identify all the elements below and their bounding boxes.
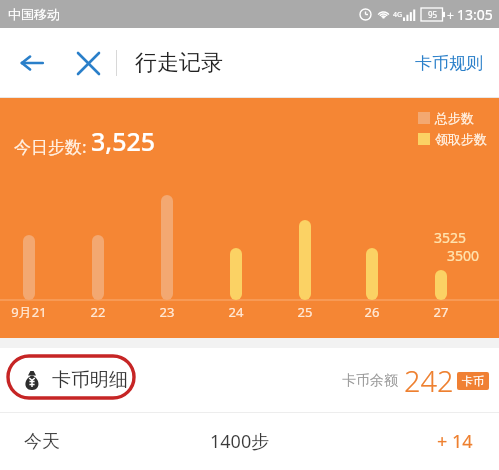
staticText: 3500 xyxy=(447,246,480,265)
staticText: 卡币规则 xyxy=(415,53,483,74)
staticText: 23 xyxy=(147,303,187,321)
staticText: 行走记录 xyxy=(135,49,223,77)
button[interactable]: 卡币规则 xyxy=(411,45,487,82)
staticText: 13:05 xyxy=(457,5,493,24)
staticText: 3525 xyxy=(434,228,467,247)
staticText: 卡币 xyxy=(462,374,484,388)
button[interactable]: Close xyxy=(68,43,108,83)
button[interactable]: 卡币明细 xyxy=(8,361,142,399)
staticText: 卡币余额 xyxy=(342,372,398,390)
button[interactable]: Back xyxy=(12,43,52,83)
staticText: 24 xyxy=(216,303,256,321)
staticText: 1400步 xyxy=(210,429,270,454)
staticText: 中国移动 xyxy=(8,6,60,22)
staticText: 今日步数: xyxy=(14,135,87,158)
staticText: 9月21 xyxy=(9,303,49,321)
staticText: 3,525 xyxy=(91,124,156,158)
staticText: 4G xyxy=(393,10,403,20)
staticText: + xyxy=(447,7,454,23)
staticText: 领取步数 xyxy=(435,131,487,147)
staticText: 总步数 xyxy=(435,110,474,126)
staticText: 242 xyxy=(404,361,454,400)
staticText: 95 xyxy=(428,9,438,20)
staticText: 27 xyxy=(421,303,461,321)
staticText: 25 xyxy=(285,303,325,321)
staticText: + 14 xyxy=(437,429,473,454)
staticText: 今天 xyxy=(24,430,60,453)
staticText: 26 xyxy=(352,303,392,321)
staticText: 22 xyxy=(78,303,118,321)
staticText: 卡币明细 xyxy=(52,368,128,392)
